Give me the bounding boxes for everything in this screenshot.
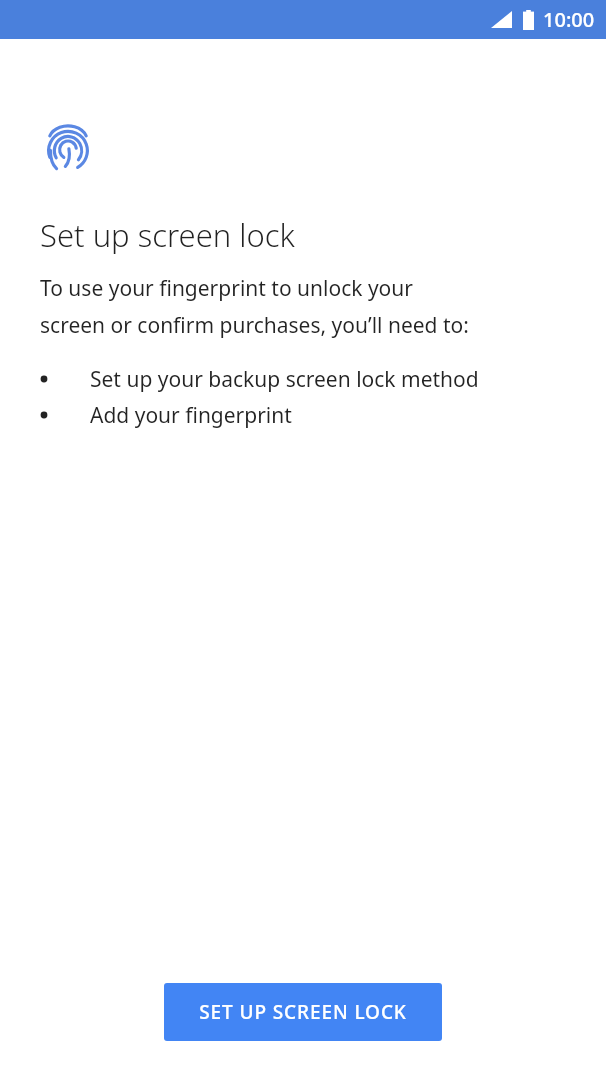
button[interactable]: SET UP SCREEN LOCK — [164, 983, 442, 1041]
staticText: 10:00 — [543, 6, 595, 33]
staticText: Set up screen lock — [40, 214, 295, 256]
staticText: To use your fingerprint to unlock your s… — [40, 274, 469, 339]
staticText: SET UP SCREEN LOCK — [199, 999, 407, 1025]
staticText: Set up your backup screen lock method — [90, 365, 479, 394]
staticText: Add your fingerprint — [90, 401, 292, 430]
